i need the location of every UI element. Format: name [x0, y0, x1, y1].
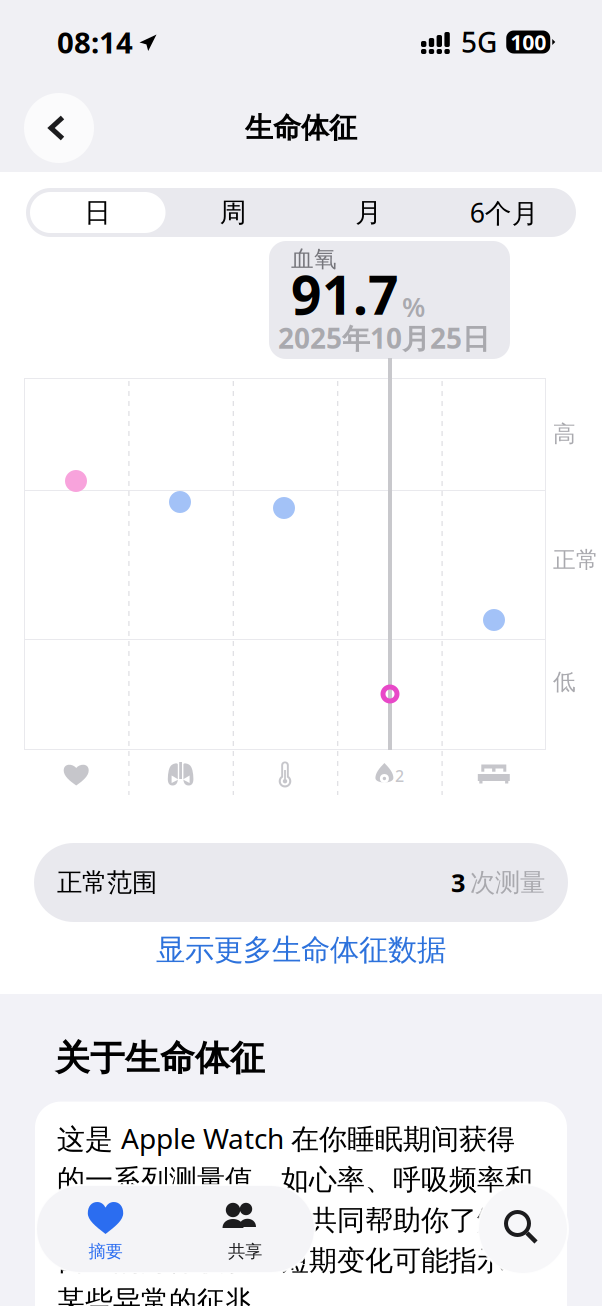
- staticText: 2: [395, 765, 404, 786]
- button[interactable]: 搜索: [475, 1184, 571, 1274]
- staticText: 关于生命体征: [55, 1037, 265, 1080]
- button[interactable]: 月: [301, 192, 436, 233]
- staticText: 低: [553, 668, 576, 696]
- staticText: 日: [84, 196, 111, 229]
- staticText: 5G: [461, 23, 497, 61]
- staticText: 正常范围: [57, 867, 157, 898]
- staticText: 08:14: [57, 22, 133, 61]
- staticText: %: [402, 289, 425, 324]
- button[interactable]: 6个月: [436, 192, 572, 233]
- staticText: 这是 Apple Watch 在你睡眠期间获得: [57, 1120, 515, 1157]
- staticText: 生命体征: [245, 111, 357, 145]
- staticText: 6个月: [470, 195, 539, 230]
- staticText: 血氧: [291, 245, 337, 273]
- staticText: 自己的身体状况。短期变化可能指示: [57, 1243, 505, 1278]
- staticText: 100: [510, 28, 546, 56]
- staticText: 2025年10月25日: [278, 319, 490, 357]
- staticText: 摘要: [88, 1241, 122, 1262]
- button[interactable]: 摘要: [36, 1185, 175, 1273]
- staticText: 3: [451, 866, 465, 899]
- staticText: 高: [553, 420, 576, 448]
- staticText: 某些异常的征兆。: [57, 1284, 281, 1306]
- staticText: 周: [220, 196, 247, 229]
- button[interactable]: 正常范围: [0, 843, 602, 922]
- staticText: 月: [355, 196, 382, 229]
- button[interactable]: 返回: [24, 93, 94, 163]
- staticText: 的一系列测量值，如心率、呼吸频率和: [57, 1163, 533, 1197]
- staticText: 显示更多生命体征数据: [156, 932, 446, 968]
- staticText: 体温。这些测量值可共同帮助你了解: [57, 1203, 505, 1238]
- staticText: 正常: [553, 546, 599, 574]
- button[interactable]: 周: [165, 192, 301, 233]
- button[interactable]: 日: [30, 192, 165, 233]
- staticText: 91.7: [291, 259, 399, 329]
- button[interactable]: 显示更多生命体征数据: [0, 924, 602, 976]
- button[interactable]: 共享: [175, 1185, 315, 1273]
- staticText: 共享: [228, 1241, 262, 1262]
- staticText: 次测量: [470, 867, 545, 898]
